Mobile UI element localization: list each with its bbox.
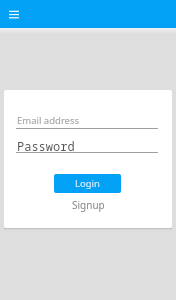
button[interactable] — [5, 5, 23, 23]
button[interactable]: Signup — [4, 197, 172, 212]
button[interactable]: Login — [54, 174, 121, 193]
staticText: Login — [75, 177, 100, 190]
button[interactable]: Email address — [16, 110, 158, 129]
staticText: Signup — [72, 198, 105, 212]
staticText: Email address — [17, 114, 80, 127]
button[interactable]: Password — [16, 134, 158, 153]
staticText: Password — [17, 138, 75, 154]
